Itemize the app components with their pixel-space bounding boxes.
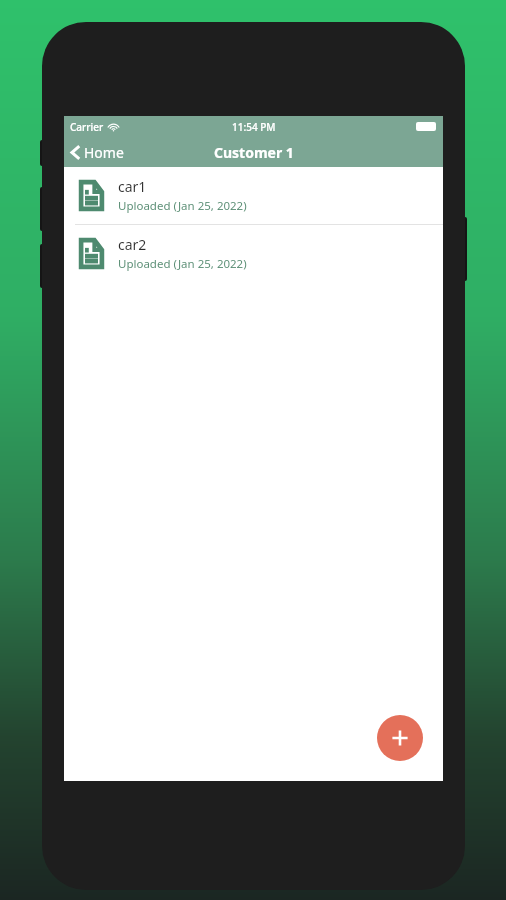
staticText: car2 [118,235,147,254]
staticText: Carrier [70,120,104,134]
button[interactable]: car2 [64,225,443,282]
staticText: 11:54 PM [232,120,276,134]
button[interactable]: Home [64,139,132,166]
button[interactable]: car1 [64,167,443,224]
staticText: car1 [118,177,147,196]
button[interactable]: Add [377,715,423,761]
staticText: Customer 1 [214,143,294,162]
staticText: Uploaded (Jan 25, 2022) [118,256,247,272]
staticText: Uploaded (Jan 25, 2022) [118,198,247,214]
staticText: Home [84,143,124,162]
